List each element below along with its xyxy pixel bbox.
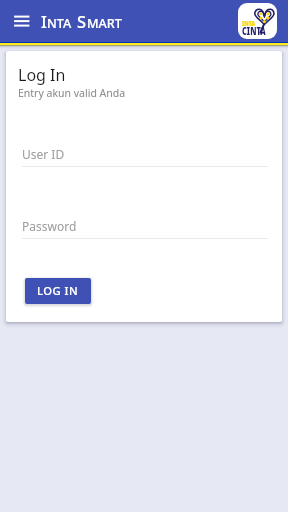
staticText: INTA <box>242 18 255 28</box>
staticText: S <box>77 10 87 32</box>
staticText: Password <box>22 218 77 234</box>
staticText: I <box>41 10 47 32</box>
staticText: Log In <box>18 64 66 86</box>
button[interactable]: Inta Cinta logo <box>238 3 277 39</box>
button[interactable]: Password <box>22 215 268 240</box>
staticText: CINTA <box>242 23 266 38</box>
button[interactable]: LOG IN <box>25 278 91 304</box>
staticText: MART <box>87 15 122 32</box>
staticText: NTA <box>47 15 72 32</box>
button[interactable]: User ID <box>22 143 268 167</box>
staticText: LOG IN <box>37 283 79 298</box>
staticText: Entry akun valid Anda <box>18 86 126 100</box>
staticText: User ID <box>22 146 65 162</box>
button[interactable]: Open navigation menu <box>9 10 31 32</box>
